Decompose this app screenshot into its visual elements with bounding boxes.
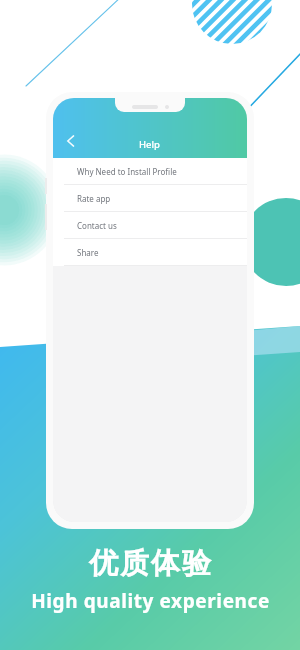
staticText: 优质体验 <box>88 545 212 582</box>
staticText: Why Need to Install Profile <box>77 166 177 177</box>
staticText: High quality experience <box>31 588 270 614</box>
staticText: Share <box>77 247 99 258</box>
staticText: Rate app <box>77 193 111 204</box>
button[interactable]: Back <box>56 126 86 156</box>
staticText: Contact us <box>77 220 117 231</box>
button[interactable]: Contact us <box>53 212 247 238</box>
staticText: Help <box>139 138 161 151</box>
button[interactable]: Why Need to Install Profile <box>53 158 247 184</box>
button[interactable]: Share <box>53 239 247 265</box>
button[interactable]: Rate app <box>53 185 247 211</box>
